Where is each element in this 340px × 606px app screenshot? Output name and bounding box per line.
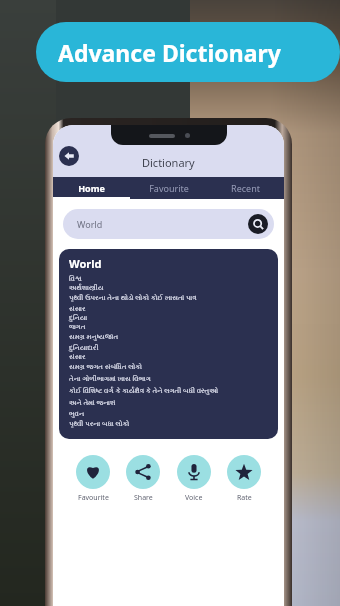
button[interactable]: Voice: [175, 453, 213, 505]
staticText: Share: [134, 493, 153, 503]
button[interactable]: Favourite: [130, 177, 207, 199]
staticText: પૃથ્વી પરના બધા લોકો: [69, 419, 130, 429]
button[interactable]: Share: [124, 453, 162, 505]
staticText: સંસાર: [69, 305, 86, 312]
staticText: સમગ્ર જગત સંબંધિત લોકો: [69, 362, 143, 372]
button[interactable]: Back: [59, 146, 79, 166]
button[interactable]: Favourite: [74, 453, 112, 505]
staticText: Dictionary: [142, 155, 195, 170]
staticText: જગત: [69, 323, 86, 330]
staticText: દુનિયાદારી: [69, 344, 99, 351]
staticText: દુનિયા: [69, 314, 88, 321]
staticText: Home: [78, 182, 105, 194]
button[interactable]: Home: [53, 177, 130, 199]
button[interactable]: Advance Dictionary: [36, 22, 340, 82]
staticText: Rate: [237, 493, 252, 503]
staticText: કોઈ વિશિષ્ટ વર્ગ કે કાર્યક્ષેત્ર કે તેને…: [69, 386, 219, 396]
button[interactable]: World: [63, 209, 274, 239]
staticText: Favourite: [78, 493, 109, 503]
staticText: અને તેમાં જનાશં: [69, 398, 116, 408]
staticText: Favourite: [149, 182, 189, 194]
staticText: પૃથ્વી ઉપરના તેના થોડો લોકો કોઈ ખાસતાં પ…: [69, 293, 197, 303]
staticText: વિશ્વ: [69, 275, 82, 282]
button[interactable]: Recent: [207, 177, 284, 199]
staticText: ભુવન: [69, 410, 85, 417]
button[interactable]: Rate: [225, 453, 263, 505]
staticText: World: [69, 256, 102, 271]
staticText: અર્થશાસ્ત્રીય: [69, 284, 104, 291]
button[interactable]: World: [59, 249, 278, 439]
staticText: Recent: [231, 182, 260, 194]
staticText: World: [77, 218, 103, 230]
button[interactable]: Search: [248, 214, 268, 234]
staticText: સંસાર: [69, 353, 86, 360]
staticText: સમગ્ર મનુષ્યજાત: [69, 332, 119, 342]
staticText: Voice: [185, 493, 203, 503]
staticText: Advance Dictionary: [58, 37, 281, 68]
staticText: તેના ગોળીભાગમાં ખાસ વિભાગ: [69, 374, 151, 384]
